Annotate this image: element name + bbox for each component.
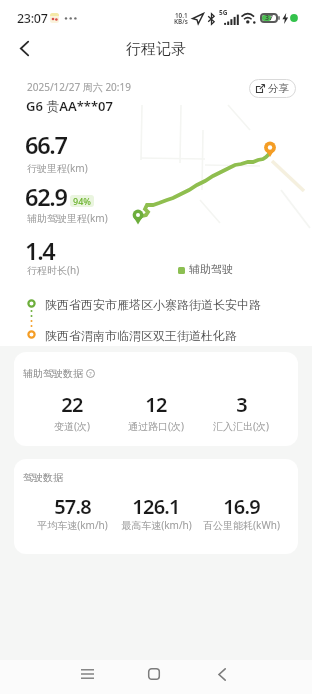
staticText: 辅助驾驶 [189,262,233,276]
staticText: 汇入汇出(次) [213,419,269,433]
staticText: ? [89,370,92,378]
staticText: G6 贵AA***07 [26,97,113,115]
staticText: 百公里能耗(kWh) [203,518,280,532]
staticText: 66.7 [25,129,67,161]
staticText: 辅助驾驶里程(km) [27,211,108,225]
staticText: 62.9 [25,181,67,213]
staticText: KB/s [174,17,188,26]
staticText: 37 [265,13,274,23]
staticText: 23:07 [17,10,48,27]
button[interactable]: 分享 [249,79,296,98]
staticText: 3 [236,391,247,418]
staticText: 通过路口(次) [128,419,184,433]
staticText: 行程记录 [126,40,186,58]
staticText: 16.9 [223,493,260,520]
staticText: 22 [61,391,83,418]
staticText: 最高车速(km/h) [121,518,192,532]
staticText: 10.1 [175,11,188,20]
staticText: 变道(次) [54,419,90,433]
staticText: 1.4 [25,235,55,267]
staticText: 平均车速(km/h) [37,518,108,532]
staticText: 行驶里程(km) [27,161,88,175]
button[interactable] [72,660,102,688]
staticText: 5G [219,8,228,17]
staticText: 12 [145,391,167,418]
staticText: 126.1 [132,493,180,520]
button[interactable] [6,35,42,62]
staticText: 陕西省渭南市临渭区双王街道杜化路 [45,328,237,343]
staticText: 2025/12/27 周六 20:19 [27,80,131,94]
staticText: 94% [73,195,91,207]
button[interactable] [207,660,237,688]
staticText: 行程时长(h) [27,263,80,277]
staticText: 辅助驾驶数据 [23,367,83,380]
staticText: 57.8 [54,493,91,520]
button[interactable] [139,660,169,688]
staticText: 分享 [268,82,289,95]
staticText: 陕西省西安市雁塔区小寨路街道长安中路 [45,297,261,312]
staticText: 驾驶数据 [23,471,63,484]
